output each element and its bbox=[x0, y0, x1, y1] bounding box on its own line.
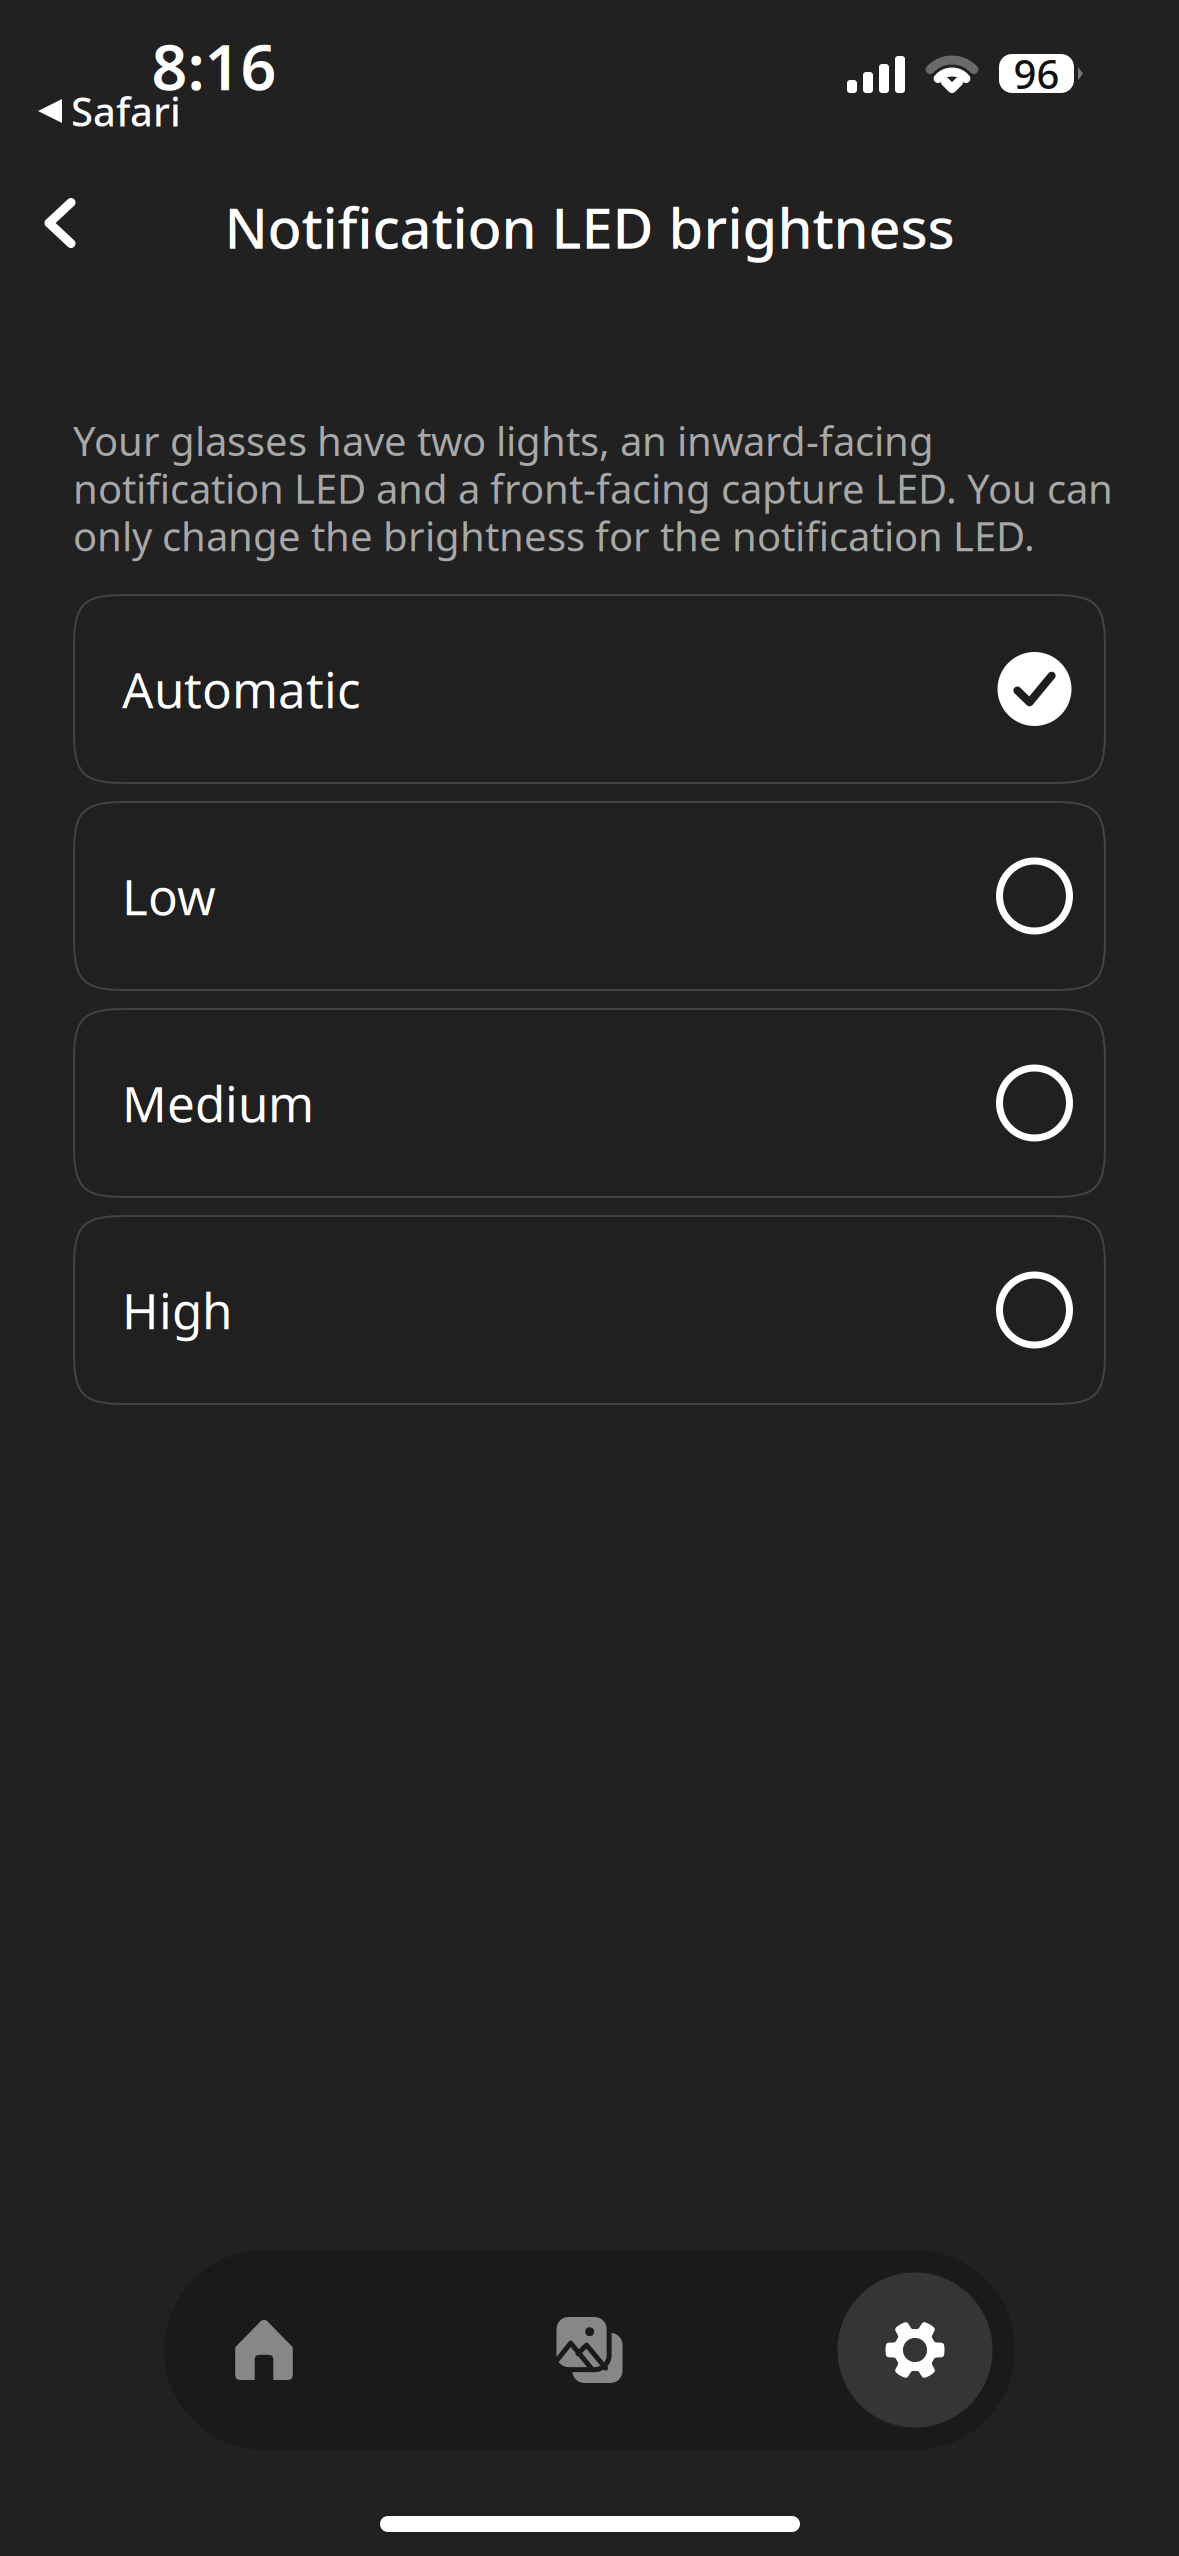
staticText: Your glasses have two lights, an inward-… bbox=[73, 414, 1113, 562]
button[interactable]: Back bbox=[5, 168, 115, 278]
button[interactable]: Medium bbox=[73, 1008, 1106, 1198]
staticText: 96 bbox=[1013, 47, 1059, 100]
button[interactable]: Home bbox=[184, 2270, 344, 2430]
staticText: Automatic bbox=[122, 656, 361, 722]
button[interactable]: Safari bbox=[38, 89, 181, 133]
staticText: Safari bbox=[71, 84, 181, 137]
staticText: Medium bbox=[122, 1070, 314, 1136]
staticText: High bbox=[122, 1277, 232, 1343]
button[interactable]: Settings bbox=[835, 2270, 995, 2430]
staticText: Notification LED brightness bbox=[224, 190, 954, 264]
button[interactable]: High bbox=[73, 1215, 1106, 1405]
button[interactable]: Automatic bbox=[73, 594, 1106, 784]
staticText: Low bbox=[122, 863, 216, 929]
button[interactable]: Gallery bbox=[509, 2270, 669, 2430]
button[interactable]: Low bbox=[73, 801, 1106, 991]
staticText: 8:16 bbox=[151, 24, 276, 108]
